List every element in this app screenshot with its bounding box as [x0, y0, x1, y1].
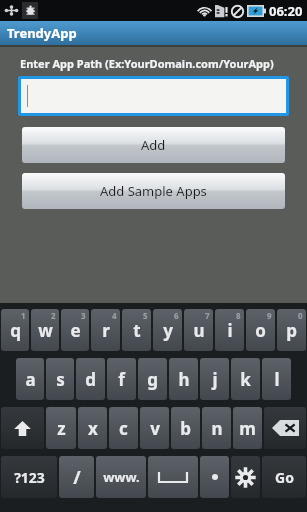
button[interactable]: z: [46, 407, 76, 449]
button[interactable]: Add Sample Apps: [22, 173, 285, 209]
staticText: a: [25, 368, 36, 391]
button[interactable]: v: [140, 407, 169, 449]
button[interactable]: Backspace: [264, 407, 306, 449]
staticText: 3: [81, 310, 86, 321]
button[interactable]: www.: [96, 456, 146, 498]
staticText: b: [180, 417, 191, 440]
button[interactable]: w: [31, 309, 59, 351]
staticText: Enter App Path (Ex:YourDomain.com/YourAp…: [20, 56, 274, 71]
staticText: 1: [21, 310, 26, 321]
staticText: w: [38, 319, 53, 342]
staticText: Add: [141, 136, 166, 154]
staticText: o: [255, 319, 266, 342]
staticText: Go: [275, 468, 294, 487]
button[interactable]: Period: [200, 456, 229, 498]
staticText: q: [10, 319, 21, 342]
button[interactable]: f: [107, 358, 136, 400]
button[interactable]: a: [16, 358, 44, 400]
button[interactable]: b: [171, 407, 200, 449]
staticText: u: [193, 319, 205, 342]
staticText: 7: [205, 310, 210, 321]
staticText: r: [102, 319, 110, 342]
staticText: 06:20: [269, 2, 303, 20]
button[interactable]: Shift: [1, 407, 44, 449]
staticText: c: [119, 417, 128, 440]
button[interactable]: Go: [262, 456, 306, 498]
button[interactable]: y: [153, 309, 182, 351]
button[interactable]: TrendyApp: [0, 21, 307, 45]
staticText: k: [240, 368, 251, 391]
staticText: 5: [143, 310, 148, 321]
button[interactable]: x: [78, 407, 107, 449]
staticText: v: [150, 417, 160, 440]
staticText: s: [56, 368, 65, 391]
staticText: www.: [103, 468, 140, 486]
staticText: 2: [51, 310, 56, 321]
staticText: f: [118, 368, 125, 391]
staticText: 0: [298, 310, 303, 321]
button[interactable]: ?123: [1, 456, 57, 498]
button[interactable]: q: [1, 309, 29, 351]
staticText: n: [211, 417, 223, 440]
button[interactable]: l: [262, 358, 291, 400]
button[interactable]: r: [91, 309, 120, 351]
staticText: d: [85, 368, 96, 391]
button[interactable]: m: [233, 407, 262, 449]
staticText: 9: [267, 310, 272, 321]
staticText: z: [57, 417, 66, 440]
staticText: e: [70, 319, 81, 342]
staticText: Add Sample Apps: [100, 182, 207, 200]
staticText: y: [163, 319, 173, 342]
staticText: t: [133, 319, 141, 342]
staticText: ?123: [14, 468, 45, 487]
button[interactable]: c: [109, 407, 138, 449]
button[interactable]: g: [138, 358, 167, 400]
button[interactable]: j: [200, 358, 229, 400]
button[interactable]: p: [277, 309, 306, 351]
button[interactable]: i: [215, 309, 244, 351]
staticText: p: [286, 319, 297, 342]
staticText: l: [274, 368, 280, 391]
button[interactable]: Settings: [231, 456, 260, 498]
staticText: g: [147, 368, 158, 391]
staticText: i: [227, 319, 233, 342]
staticText: m: [239, 417, 256, 440]
staticText: 4: [112, 310, 117, 321]
button[interactable]: k: [231, 358, 260, 400]
button[interactable]: o: [246, 309, 275, 351]
button[interactable]: n: [202, 407, 231, 449]
staticText: x: [88, 417, 98, 440]
button[interactable]: u: [184, 309, 213, 351]
button[interactable]: /: [59, 456, 94, 498]
staticText: /: [73, 465, 81, 490]
button[interactable]: Space: [148, 456, 198, 498]
staticText: 8: [236, 310, 241, 321]
staticText: j: [212, 368, 218, 391]
button[interactable]: t: [122, 309, 151, 351]
button[interactable]: [21, 79, 286, 113]
staticText: TrendyApp: [7, 24, 77, 42]
staticText: 6: [174, 310, 179, 321]
button[interactable]: s: [46, 358, 74, 400]
button[interactable]: d: [76, 358, 105, 400]
button[interactable]: h: [169, 358, 198, 400]
button[interactable]: e: [61, 309, 89, 351]
button[interactable]: Add: [22, 127, 285, 163]
staticText: h: [178, 368, 190, 391]
